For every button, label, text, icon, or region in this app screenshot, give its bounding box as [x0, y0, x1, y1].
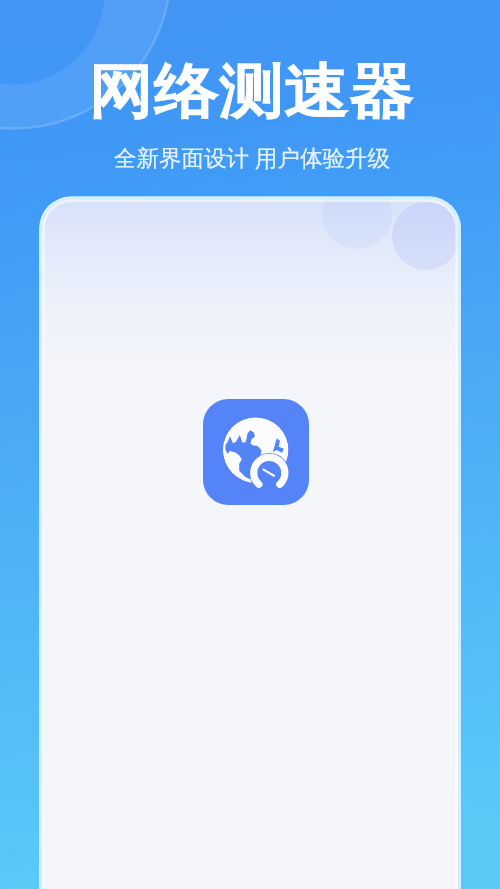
button[interactable]: 网络测速器	[203, 399, 309, 505]
staticText: 全新界面设计 用户体验升级	[2, 142, 500, 173]
staticText: 网络测速器	[0, 56, 500, 130]
